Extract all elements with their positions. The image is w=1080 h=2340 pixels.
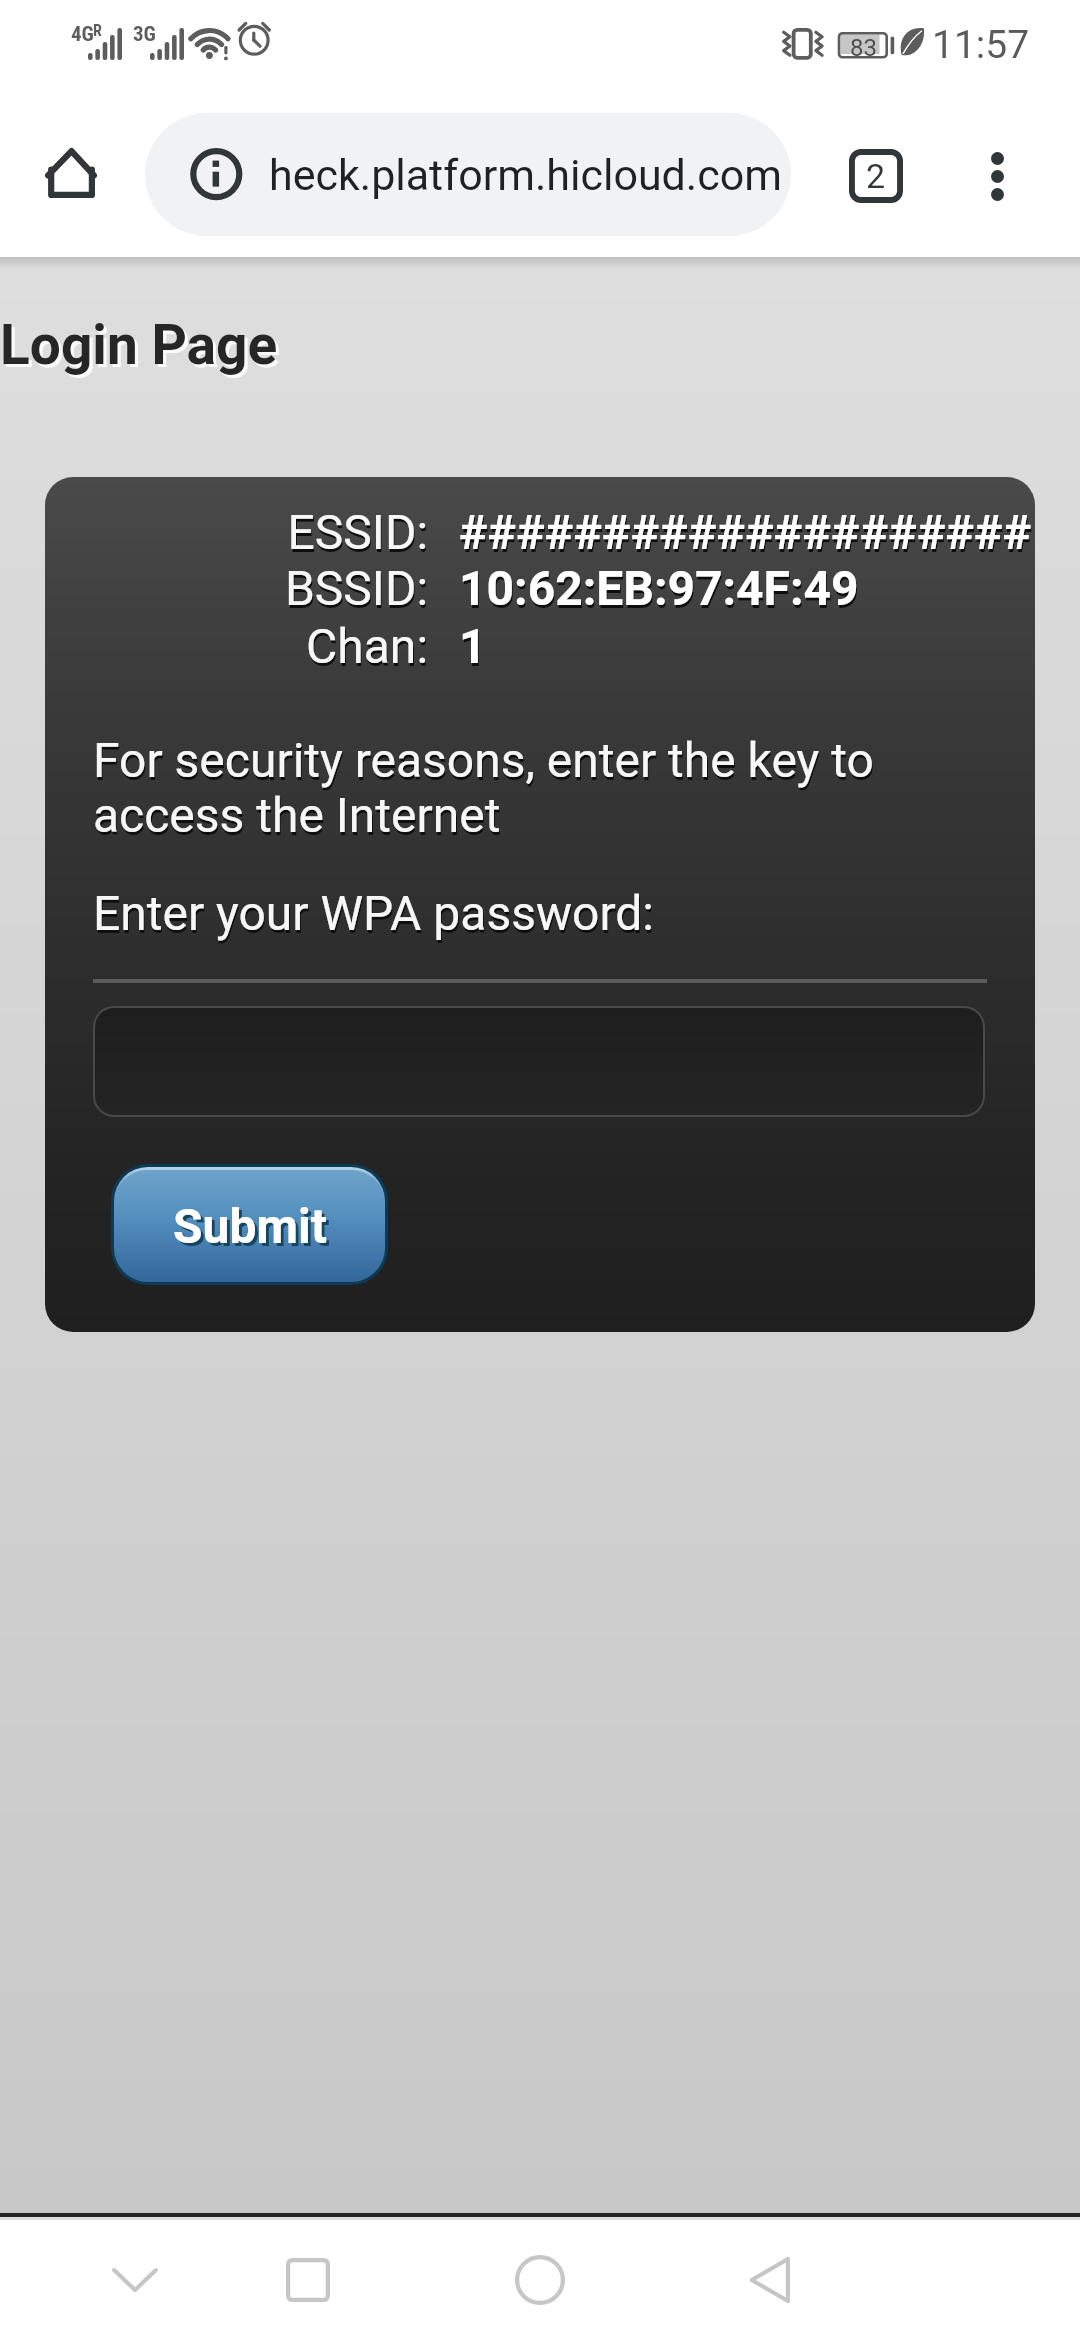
staticText: R [93, 21, 102, 40]
button[interactable]: heck.platform.hicloud.com [145, 113, 791, 236]
staticText: 11:57 [932, 22, 1030, 68]
staticText: 10:62:EB:97:4F:49 [460, 563, 860, 619]
staticText: For security reasons, enter the key to a… [93, 732, 874, 843]
button[interactable]: Submit [115, 1170, 384, 1281]
button[interactable]: Home [480, 2220, 600, 2340]
staticText: 10:62:EB:97:4F:49 [459, 560, 859, 616]
staticText: BSSID: [284, 560, 428, 616]
staticText: Submit [176, 1201, 330, 1257]
staticText: Enter your WPA password: [94, 888, 655, 944]
button[interactable]: Tabs [822, 122, 930, 230]
staticText: ESSID: [287, 504, 428, 560]
staticText: Chan: [306, 618, 428, 674]
staticText: Enter your WPA password: [93, 885, 654, 941]
button[interactable]: Hide keyboard [80, 2220, 190, 2340]
staticText: 2 [866, 156, 886, 196]
staticText: #################### [460, 507, 1033, 563]
staticText: 3G [133, 22, 156, 47]
staticText: 4G [71, 22, 94, 47]
button[interactable]: Home [18, 120, 126, 228]
staticText: #################### [459, 504, 1032, 560]
staticText: 1 [460, 621, 488, 677]
staticText: Submit [173, 1198, 327, 1254]
staticText: Login Page [0, 313, 278, 377]
staticText: heck.platform.hicloud.com [269, 150, 782, 200]
button[interactable]: Back [709, 2220, 829, 2340]
button[interactable]: More options [942, 122, 1050, 230]
button[interactable]: Recent apps [248, 2220, 368, 2340]
staticText: For security reasons, enter the key to a… [94, 735, 875, 846]
staticText: Login Page [3, 316, 281, 380]
staticText: Chan: [307, 621, 429, 677]
staticText: 1 [459, 618, 487, 674]
staticText: BSSID: [285, 563, 429, 619]
staticText: 83 [850, 34, 877, 62]
staticText: ESSID: [288, 507, 429, 563]
